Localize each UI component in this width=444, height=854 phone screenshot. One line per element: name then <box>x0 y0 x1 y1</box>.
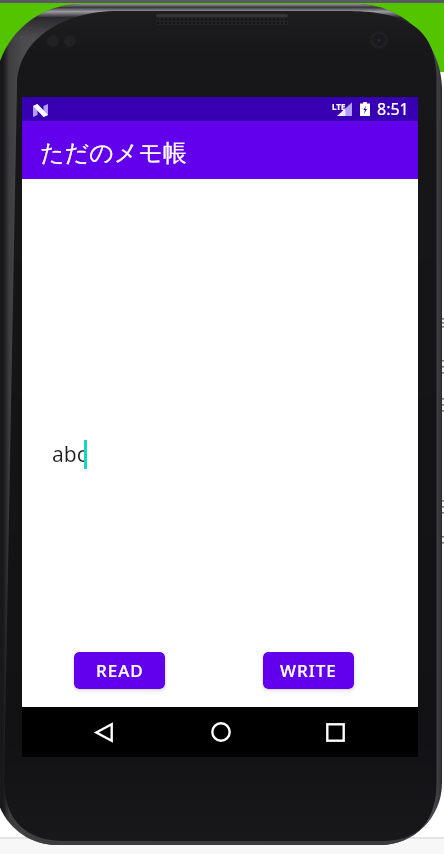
staticText: WRITE <box>280 659 337 682</box>
button[interactable]: READ <box>74 652 165 689</box>
button[interactable]: Back <box>76 707 132 757</box>
button[interactable]: Recents <box>307 707 363 757</box>
button[interactable]: WRITE <box>263 652 354 689</box>
staticText: ただのメモ帳 <box>40 138 187 168</box>
staticText: abc <box>52 440 87 469</box>
button[interactable]: Home <box>193 707 249 757</box>
staticText: 8:51 <box>377 98 409 120</box>
staticText: LTE <box>332 101 346 112</box>
staticText: READ <box>96 659 144 682</box>
